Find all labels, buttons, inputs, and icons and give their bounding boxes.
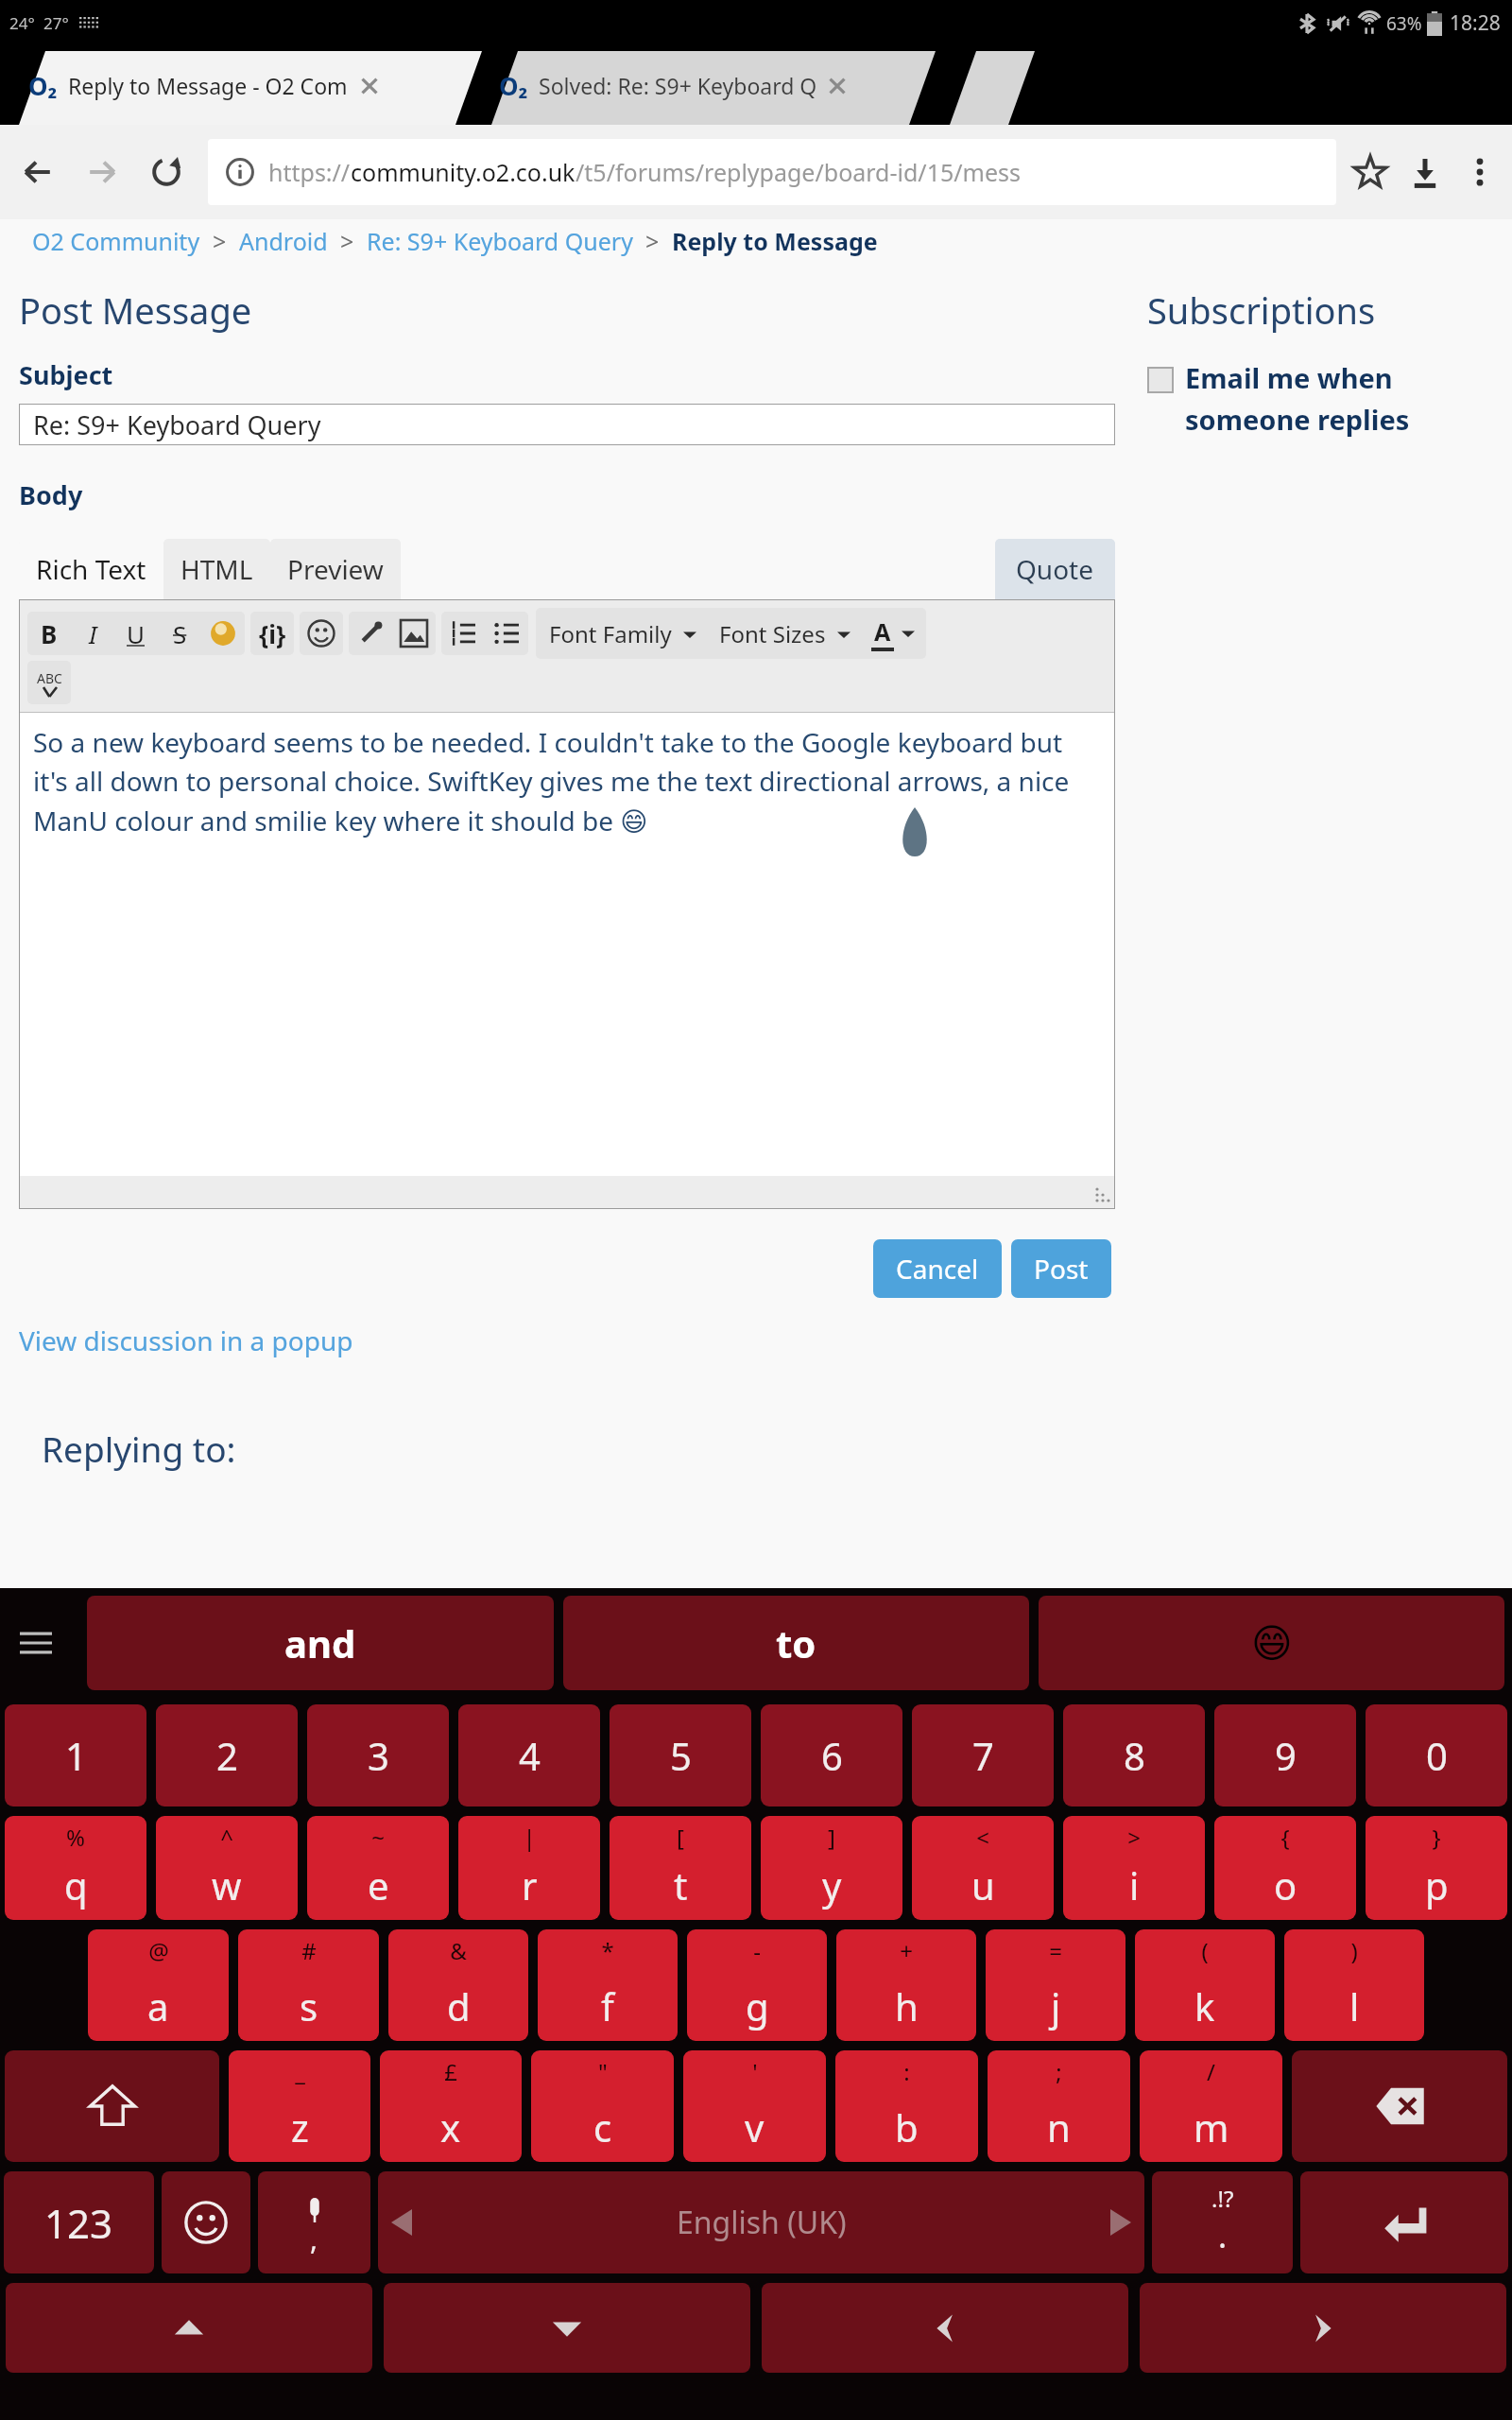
button[interactable]: Text colour	[862, 608, 924, 659]
button[interactable]: 3	[307, 1704, 449, 1806]
button[interactable]: ^	[156, 1816, 298, 1920]
staticText: {	[1280, 1822, 1290, 1853]
button[interactable]: {	[1214, 1816, 1356, 1920]
button[interactable]: -	[687, 1929, 827, 2041]
button[interactable]: O₂	[499, 45, 924, 125]
button[interactable]: Cancel	[873, 1239, 1002, 1298]
button[interactable]: '	[683, 2050, 826, 2162]
staticText: 0	[1426, 1730, 1448, 1781]
button[interactable]: Emoji	[162, 2171, 250, 2273]
button[interactable]: Keyboard menu	[8, 1615, 64, 1671]
button[interactable]: O₂	[28, 45, 477, 125]
button[interactable]: B	[27, 612, 71, 655]
button[interactable]: Rich Text	[19, 539, 163, 599]
button[interactable]: Post	[1011, 1239, 1111, 1298]
button[interactable]: :	[835, 2050, 978, 2162]
button[interactable]: Reload	[142, 147, 191, 197]
button[interactable]: I	[71, 612, 114, 655]
button[interactable]: +	[836, 1929, 976, 2041]
button[interactable]: Left	[762, 2283, 1128, 2373]
button[interactable]: Bulleted list	[485, 612, 528, 655]
button[interactable]: Insert image	[392, 612, 436, 655]
staticText: ,	[310, 2220, 318, 2258]
button[interactable]: £	[380, 2050, 522, 2162]
staticText: ABC	[37, 669, 62, 687]
button[interactable]: Bookmark	[1346, 147, 1395, 197]
staticText: <	[976, 1822, 989, 1853]
button[interactable]: Down	[384, 2283, 750, 2373]
button[interactable]: ;	[988, 2050, 1130, 2162]
button[interactable]: 123	[4, 2171, 154, 2273]
button[interactable]: Forward	[77, 147, 127, 197]
button[interactable]: 5	[610, 1704, 751, 1806]
button[interactable]: <	[912, 1816, 1054, 1920]
button[interactable]: Highlight	[201, 612, 245, 655]
button[interactable]: Insert link	[349, 612, 392, 655]
button[interactable]: 7	[912, 1704, 1054, 1806]
button[interactable]: https://	[208, 139, 1336, 205]
button[interactable]: _	[229, 2050, 370, 2162]
button[interactable]: Quote	[995, 539, 1115, 599]
button[interactable]: Voice input	[258, 2171, 370, 2273]
button[interactable]: @	[88, 1929, 229, 2041]
button[interactable]: [	[610, 1816, 751, 1920]
button[interactable]: 8	[1063, 1704, 1205, 1806]
button[interactable]: #	[238, 1929, 379, 2041]
button[interactable]: Spell check	[27, 661, 71, 704]
button[interactable]: 1	[5, 1704, 146, 1806]
staticText: HTML	[180, 551, 253, 587]
button[interactable]: 0	[1366, 1704, 1507, 1806]
button[interactable]: Backspace	[1292, 2050, 1507, 2162]
button[interactable]: HTML	[163, 539, 270, 599]
button[interactable]: &	[388, 1929, 528, 2041]
button[interactable]: >	[1063, 1816, 1205, 1920]
button[interactable]: {i}	[250, 612, 294, 655]
button[interactable]: 9	[1214, 1704, 1356, 1806]
button[interactable]: |	[458, 1816, 600, 1920]
staticText: Subject	[19, 357, 113, 392]
button[interactable]: 4	[458, 1704, 600, 1806]
button[interactable]: S	[158, 612, 201, 655]
button[interactable]: "	[531, 2050, 674, 2162]
staticText: O₂	[28, 69, 58, 102]
button[interactable]: }	[1366, 1816, 1507, 1920]
button[interactable]: *	[538, 1929, 678, 2041]
staticText: h	[895, 1980, 919, 2031]
button[interactable]: Emoticon	[300, 612, 343, 655]
button[interactable]: English (UK)	[378, 2171, 1144, 2273]
button[interactable]: Emoji suggestion	[1039, 1596, 1504, 1690]
button[interactable]: Shift	[5, 2050, 219, 2162]
button[interactable]: Email me when someone replies	[1147, 359, 1410, 438]
staticText: i	[1129, 1859, 1140, 1910]
button[interactable]: Font Sizes	[708, 611, 862, 657]
button[interactable]: ~	[307, 1816, 449, 1920]
button[interactable]: Enter	[1300, 2171, 1508, 2273]
staticText: Post	[1034, 1251, 1089, 1287]
button[interactable]: .!?	[1152, 2171, 1293, 2273]
button[interactable]: =	[986, 1929, 1125, 2041]
button[interactable]: Close tab	[353, 70, 386, 102]
button[interactable]: Font Family	[538, 611, 708, 657]
button[interactable]: Preview	[270, 539, 401, 599]
button[interactable]: Close tab	[821, 70, 853, 102]
button[interactable]: Back	[13, 147, 62, 197]
button[interactable]: and	[87, 1596, 554, 1690]
button[interactable]: ]	[761, 1816, 902, 1920]
button[interactable]: U	[114, 612, 158, 655]
button[interactable]: Numbered list	[441, 612, 485, 655]
button[interactable]: (	[1135, 1929, 1275, 2041]
button[interactable]: View discussion in a popup	[19, 1322, 353, 1358]
button[interactable]: to	[563, 1596, 1029, 1690]
button[interactable]: /	[1140, 2050, 1282, 2162]
button[interactable]: 6	[761, 1704, 902, 1806]
button[interactable]: More options	[1455, 147, 1504, 197]
button[interactable]: 2	[156, 1704, 298, 1806]
button[interactable]: Right	[1140, 2283, 1506, 2373]
staticText: Re: S9+ Keyboard Query	[33, 407, 321, 442]
button[interactable]: %	[5, 1816, 146, 1920]
button[interactable]: Up	[6, 2283, 372, 2373]
button[interactable]: Re: S9+ Keyboard Query	[20, 405, 1114, 444]
button[interactable]: Download	[1400, 147, 1450, 197]
button[interactable]: )	[1284, 1929, 1424, 2041]
staticText: >	[200, 225, 239, 257]
